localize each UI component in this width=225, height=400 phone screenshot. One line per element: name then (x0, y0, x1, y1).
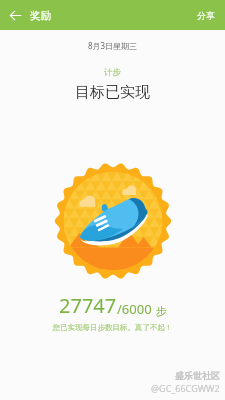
staticText: 您已实现每日步数目标。真了不起！ (0, 323, 225, 332)
staticText: @GC_66CGWW2 (151, 382, 220, 394)
staticText: 计步 (0, 67, 225, 78)
staticText: 奖励 (30, 9, 51, 22)
button[interactable]: 分享 (187, 0, 225, 30)
staticText: /6000 (117, 300, 152, 318)
button[interactable]: Back (0, 0, 30, 30)
staticText: 27747 (59, 292, 117, 319)
staticText: 8月3日星期三 (0, 40, 225, 51)
staticText: 分享 (197, 10, 215, 21)
staticText: 盛乐世社区 (175, 370, 220, 381)
staticText: 步 (156, 304, 167, 318)
staticText: 目标已实现 (0, 83, 225, 102)
